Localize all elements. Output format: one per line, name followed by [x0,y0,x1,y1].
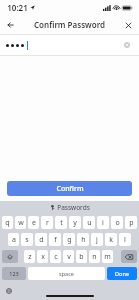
staticText: m [104,252,111,262]
staticText: i [102,218,104,228]
staticText: Confirm [56,184,84,194]
button[interactable]: y [69,216,81,229]
button[interactable]: i [97,216,109,229]
button[interactable]: o [111,216,123,229]
staticText: z [28,252,32,262]
button[interactable]: Passwords [0,201,139,214]
staticText: y [73,218,77,228]
button[interactable]: c [50,250,61,263]
staticText: l [124,235,126,245]
button[interactable]: m [102,250,113,263]
staticText: g [67,235,72,245]
button[interactable]: t [55,216,67,229]
button[interactable]: u [83,216,95,229]
staticText: c [54,252,58,262]
staticText: a [12,235,16,245]
button[interactable]: Keyboard key [2,250,18,263]
staticText: x [41,252,45,262]
staticText: 10:21 [7,2,28,13]
staticText: 123 [9,270,19,277]
staticText: v [67,252,71,262]
staticText: space [59,270,74,277]
button[interactable]: z [24,250,35,263]
button[interactable]: k [105,233,117,246]
button[interactable]: l [119,233,131,246]
staticText: o [115,218,120,228]
button[interactable]: 123 [2,267,26,280]
button[interactable]: v [63,250,74,263]
staticText: h [81,235,86,245]
button[interactable]: Close [120,17,136,33]
staticText: n [92,252,97,262]
button[interactable]: r [41,216,53,229]
staticText: p [129,218,134,228]
button[interactable]: p [125,216,137,229]
staticText: e [32,218,36,228]
button[interactable]: e [28,216,39,229]
button[interactable]: s [21,233,33,246]
staticText: q [5,218,10,228]
button[interactable]: Done [107,267,137,280]
staticText: Passwords [57,203,90,212]
button[interactable]: h [77,233,89,246]
staticText: Confirm Password [34,19,105,30]
button[interactable]: f [49,233,61,246]
button[interactable]: a [8,233,19,246]
button[interactable]: Keyboard key [121,250,137,263]
button[interactable]: x [37,250,48,263]
button[interactable]: g [63,233,75,246]
button[interactable]: q [2,216,13,229]
staticText: w [18,218,24,228]
staticText: s [25,235,29,245]
button[interactable]: space [28,267,105,280]
button[interactable]: Change keyboard language [4,286,14,296]
button[interactable]: j [91,233,103,246]
staticText: r [46,218,49,228]
staticText: f [54,235,57,245]
staticText: Done [115,270,129,277]
button[interactable]: b [76,250,87,263]
button[interactable]: w [15,216,26,229]
staticText: j [96,235,98,245]
button[interactable]: d [35,233,47,246]
button[interactable]: Clear text [121,39,133,51]
staticText: t [60,218,63,228]
staticText: k [109,235,113,245]
staticText: b [79,252,84,262]
staticText: d [39,235,44,245]
button[interactable]: Clear text [0,34,139,56]
button[interactable]: Confirm [7,181,132,196]
staticText: u [87,218,92,228]
button[interactable]: n [89,250,100,263]
button[interactable]: Back [3,17,19,33]
